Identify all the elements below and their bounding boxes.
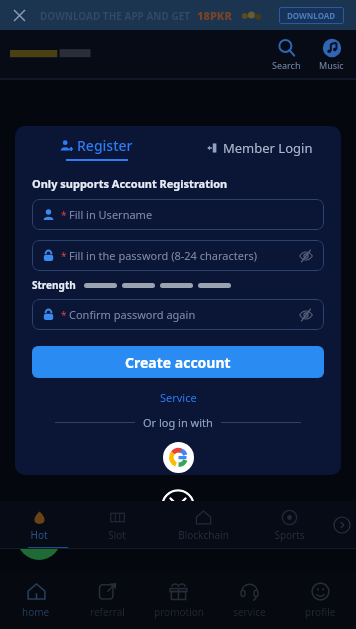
staticText: Blockchain [178,528,229,542]
staticText: Fill in the password (8-24 characters) [69,248,258,263]
staticText: * [61,308,67,322]
staticText: DOWNLOAD [287,10,336,21]
button[interactable]: referral [72,571,143,629]
button[interactable]: Music [317,38,346,71]
staticText: promotion [154,605,204,619]
staticText: Strength [32,278,76,292]
staticText: Only supports Account Registration [32,176,228,191]
button[interactable]: * [32,199,324,230]
staticText: * [61,249,67,263]
button[interactable]: home [0,571,72,629]
button[interactable]: DOWNLOAD [279,7,344,24]
button[interactable]: profile [285,571,356,629]
button[interactable]: Slot [78,506,156,545]
staticText: Search [272,59,301,71]
staticText: Or log in with [143,415,213,430]
button[interactable]: Search [270,38,303,71]
button[interactable]: Customer support [17,516,61,560]
staticText: Hot [30,528,48,542]
staticText: * [61,208,67,222]
staticText: Member Login [223,139,313,157]
staticText: referral [90,605,125,619]
button[interactable]: * [32,240,324,271]
button[interactable]: Toggle password visibility [298,307,314,323]
button[interactable]: Toggle password visibility [298,248,314,264]
staticText: Register [77,136,133,155]
button[interactable]: Sign in with Google [163,442,194,473]
staticText: Confirm password again [69,307,196,322]
button[interactable]: Register [48,132,145,165]
staticText: Slot [108,528,126,542]
staticText: Fill in Username [69,207,153,222]
button[interactable]: * [32,299,324,330]
staticText: DOWNLOAD THE APP AND GET [40,9,191,23]
staticText: profile [305,605,336,619]
staticText: 18PKR [197,8,232,23]
button[interactable]: Member Login [195,131,325,165]
button[interactable]: More categories [334,517,350,533]
staticText: Music [319,59,344,71]
button[interactable]: Close [161,489,195,523]
button[interactable]: service [214,571,285,629]
button[interactable]: Service [156,386,201,409]
staticText: service [233,605,266,619]
staticText: Create account [125,353,231,372]
button[interactable]: Sports [250,506,328,545]
button[interactable]: Hot [0,506,78,545]
staticText: Sports [274,528,305,542]
button[interactable]: promotion [143,571,214,629]
button[interactable]: Create account [32,346,324,378]
button[interactable]: Close banner [8,4,30,26]
button[interactable]: Blockchain [156,506,250,545]
staticText: home [22,605,50,619]
